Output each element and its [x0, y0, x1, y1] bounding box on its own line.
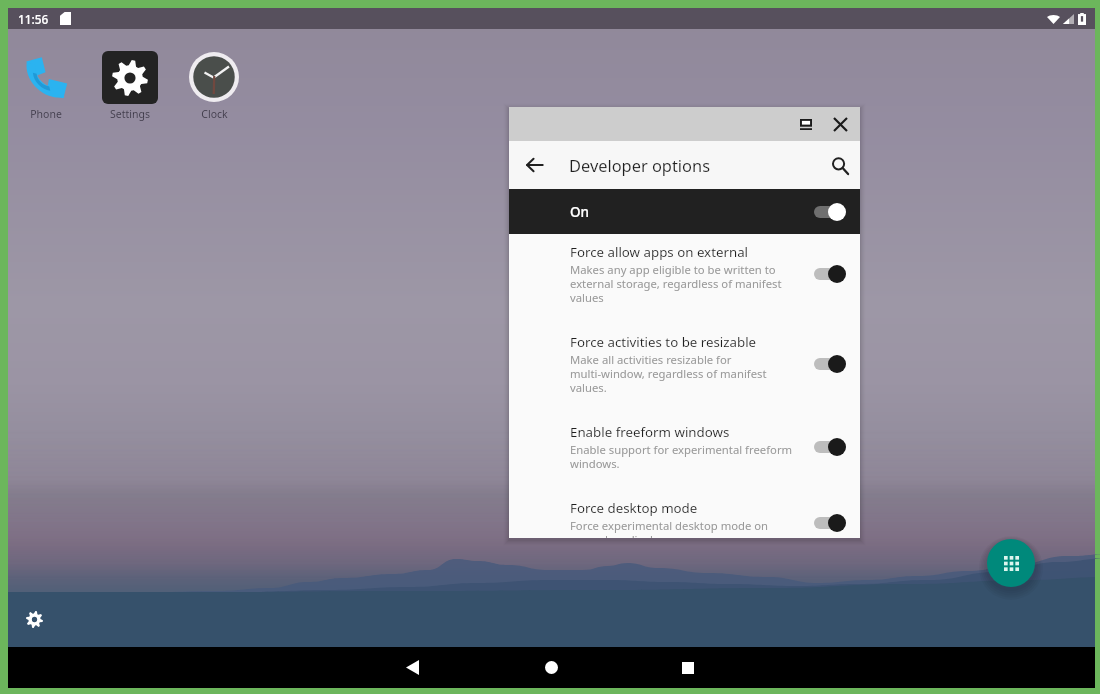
- button[interactable]: Clock: [180, 49, 248, 121]
- staticText: Make all activities resizable for multi‑…: [570, 352, 797, 395]
- button[interactable]: Force activities to be resizable: [509, 324, 860, 414]
- button[interactable]: Phone: [12, 49, 80, 121]
- button[interactable]: Enable freeform windows: [509, 414, 860, 490]
- staticText: Clock: [201, 107, 228, 121]
- button[interactable]: Recents: [651, 647, 725, 688]
- staticText: 11:56: [18, 11, 49, 27]
- button[interactable]: Settings: [96, 49, 164, 121]
- button[interactable]: [813, 438, 846, 456]
- button[interactable]: All apps: [987, 539, 1035, 587]
- staticText: Makes any app eligible to be written to …: [570, 262, 797, 305]
- button[interactable]: Force desktop mode: [509, 490, 860, 538]
- button[interactable]: Force allow apps on external: [509, 234, 860, 324]
- button[interactable]: [813, 355, 846, 373]
- staticText: Force allow apps on external: [570, 243, 749, 261]
- staticText: Force activities to be resizable: [570, 333, 757, 351]
- button[interactable]: Home: [514, 647, 588, 688]
- staticText: Force experimental desktop mode on secon…: [570, 518, 797, 538]
- button[interactable]: Close: [823, 107, 857, 141]
- button[interactable]: [813, 514, 846, 532]
- button[interactable]: Wallpaper settings: [19, 604, 50, 635]
- button[interactable]: On: [509, 189, 860, 234]
- button[interactable]: Maximize: [789, 107, 823, 141]
- staticText: Enable support for experimental freeform…: [570, 442, 797, 471]
- staticText: Enable freeform windows: [570, 423, 730, 441]
- button[interactable]: Navigate up: [509, 141, 560, 189]
- staticText: Force desktop mode: [570, 499, 698, 517]
- staticText: Developer options: [569, 154, 710, 176]
- button[interactable]: Search: [819, 145, 860, 186]
- button[interactable]: [813, 265, 846, 283]
- button[interactable]: Back: [375, 647, 449, 688]
- staticText: Phone: [30, 107, 62, 121]
- staticText: Settings: [110, 107, 150, 121]
- button[interactable]: [813, 203, 846, 221]
- staticText: On: [570, 203, 590, 221]
